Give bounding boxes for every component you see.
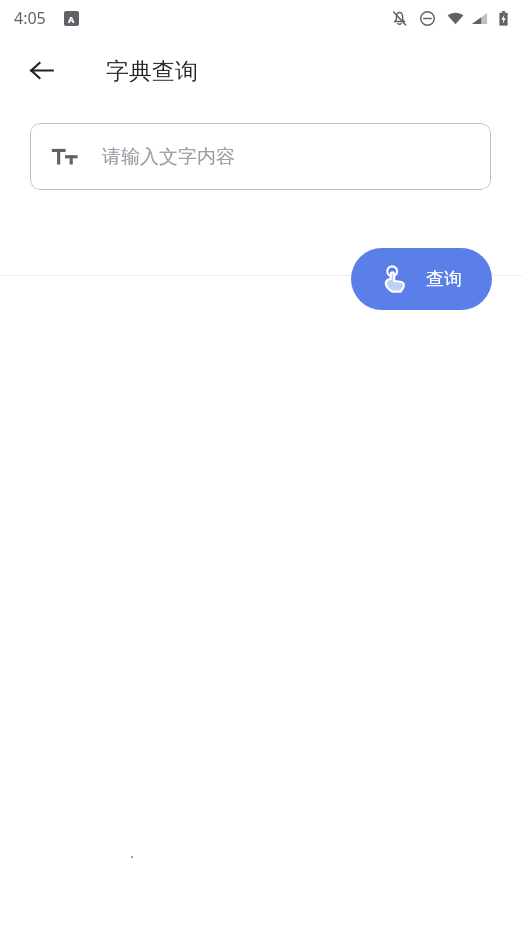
staticText: 查询 — [426, 268, 462, 291]
staticText: 请输入文字内容 — [102, 145, 235, 169]
staticText: A — [68, 13, 75, 25]
staticText: 4:05 — [14, 7, 46, 29]
button[interactable]: Query — [351, 248, 492, 310]
staticText: 字典查询 — [106, 57, 198, 86]
button[interactable]: Back — [18, 47, 64, 93]
button[interactable]: 请输入文字内容 — [30, 123, 491, 190]
other: Query — [381, 265, 409, 293]
